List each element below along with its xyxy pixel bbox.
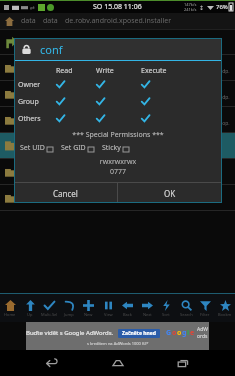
button[interactable]: Toggle permission xyxy=(56,76,96,93)
staticText: ⇄ xyxy=(30,4,36,11)
staticText: l xyxy=(187,328,190,338)
button[interactable]: bin xyxy=(0,81,235,106)
staticText: g xyxy=(182,328,187,338)
staticText: ↕ xyxy=(199,4,205,11)
button[interactable]: cache xyxy=(0,107,235,132)
staticText: .. xyxy=(24,34,28,44)
staticText: Others xyxy=(18,114,56,124)
staticText: 0777 xyxy=(14,167,222,177)
staticText: Read xyxy=(56,66,96,76)
button[interactable]: Cancel xyxy=(14,183,117,203)
button[interactable]: Next xyxy=(138,295,156,322)
staticText: SO 15.08 11:06 xyxy=(93,2,142,12)
staticText: 147k/s xyxy=(184,2,197,7)
button[interactable]: app_webview xyxy=(0,55,235,80)
button[interactable]: Up xyxy=(21,295,39,322)
staticText: úvo 06, 2015 05:16:19 odp. xyxy=(167,94,230,101)
staticText: rwxrwx--x xyxy=(24,96,48,103)
staticText: úvo 06, 2015 05:32:24 odp. xyxy=(167,68,230,75)
staticText: e xyxy=(190,328,195,338)
staticText: app_webview xyxy=(24,58,81,70)
button[interactable]: View xyxy=(99,295,117,322)
staticText: Home xyxy=(4,312,16,317)
button[interactable]: Filter xyxy=(196,295,214,322)
button[interactable]: Home xyxy=(1,295,19,322)
staticText: Search xyxy=(180,312,193,317)
staticText: Owner xyxy=(18,80,56,90)
button[interactable]: OK xyxy=(118,183,222,203)
staticText: Up xyxy=(27,312,33,317)
staticText: Set UID xyxy=(20,143,45,153)
button[interactable]: Toggle permission xyxy=(141,110,189,127)
button[interactable]: Home xyxy=(4,16,15,27)
staticText: Set GID xyxy=(61,143,86,153)
button[interactable]: data xyxy=(43,16,58,26)
button[interactable]: Set GID xyxy=(61,143,94,153)
button[interactable]: Začněte hned xyxy=(122,330,156,337)
button[interactable]: Sticky xyxy=(102,143,129,153)
button[interactable]: Back xyxy=(39,350,65,376)
staticText: View xyxy=(104,312,113,317)
staticText: cache xyxy=(24,110,49,122)
button[interactable]: de.robv.android.xposed.installer xyxy=(65,16,172,26)
button[interactable] xyxy=(0,133,235,158)
staticText: bin xyxy=(24,84,38,96)
staticText: Multi-Sel xyxy=(41,312,58,317)
staticText: úvo 10, 2015 07:31:53 dop. xyxy=(167,120,230,127)
staticText: New xyxy=(84,312,93,317)
button[interactable]: Multi-Sel xyxy=(40,295,58,322)
button[interactable]: New xyxy=(79,295,97,322)
staticText: *** Special Permissions *** xyxy=(14,130,222,140)
button[interactable]: Back xyxy=(118,295,136,322)
button[interactable]: Set UID xyxy=(20,143,53,153)
button[interactable] xyxy=(0,159,235,184)
button[interactable]: Bookm xyxy=(216,295,234,322)
staticText: o xyxy=(177,328,182,338)
staticText: Začněte hned xyxy=(122,330,156,337)
button[interactable]: Jump xyxy=(60,295,78,322)
staticText: Cancel xyxy=(53,188,78,199)
staticText: Sort xyxy=(162,312,170,317)
staticText: Bookm xyxy=(218,312,232,317)
button[interactable]: Recents xyxy=(170,350,196,376)
staticText: Write xyxy=(96,66,141,76)
staticText: Jump xyxy=(64,312,74,317)
staticText: 76% xyxy=(216,3,228,11)
button[interactable]: Toggle permission xyxy=(96,76,141,93)
staticText: AdWords xyxy=(197,326,209,340)
staticText: o xyxy=(172,328,177,338)
staticText: Sticky xyxy=(102,143,121,153)
staticText: OK xyxy=(164,188,176,199)
staticText: 241k/s xyxy=(184,7,197,12)
button[interactable]: data xyxy=(21,16,36,26)
button[interactable]: Toggle permission xyxy=(56,93,96,110)
staticText: s kreditem na AdWords 1000 Kč* xyxy=(87,341,149,346)
staticText: Back xyxy=(123,312,132,317)
staticText: Group xyxy=(18,97,56,107)
staticText: Parent folder xyxy=(24,44,55,51)
staticText: Buďte vidět s Google AdWords. xyxy=(26,329,114,337)
button[interactable]: Sort xyxy=(157,295,175,322)
button[interactable]: Buďte vidět s Google AdWords. xyxy=(26,322,209,350)
staticText: conf xyxy=(40,42,63,57)
staticText: Execute xyxy=(141,66,189,76)
button[interactable]: Toggle permission xyxy=(96,110,141,127)
button[interactable]: .. xyxy=(0,30,235,54)
button[interactable]: Toggle permission xyxy=(141,76,189,93)
staticText: Next xyxy=(143,312,152,317)
button[interactable]: Toggle permission xyxy=(96,93,141,110)
button[interactable]: Search xyxy=(177,295,195,322)
staticText: Filter xyxy=(200,312,210,317)
button[interactable]: Toggle permission xyxy=(141,93,189,110)
staticText: rwxrwxrwx xyxy=(14,157,222,167)
staticText: G xyxy=(166,328,172,338)
button[interactable]: Toggle permission xyxy=(56,110,96,127)
button[interactable]: Home xyxy=(105,350,131,376)
button[interactable] xyxy=(0,185,235,210)
